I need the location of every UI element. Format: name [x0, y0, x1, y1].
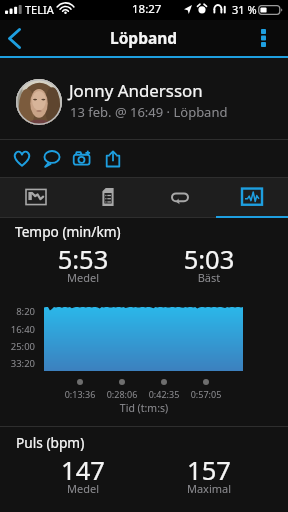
staticText: Maximal [159, 481, 259, 496]
staticText: TELIA [25, 2, 54, 17]
button[interactable]: Charts [216, 177, 288, 217]
button[interactable]: Share [98, 143, 128, 173]
staticText: 8:20 [0, 305, 35, 318]
staticText: 16:40 [0, 323, 35, 336]
staticText: 33:20 [0, 357, 35, 370]
staticText: Löpband [110, 27, 178, 48]
button[interactable]: More options [247, 22, 279, 54]
staticText: Medel [33, 481, 133, 496]
button[interactable]: Back [0, 21, 28, 55]
staticText: Medel [33, 270, 133, 285]
staticText: Tempo (min/km) [15, 222, 121, 241]
staticText: 5:03 [159, 242, 259, 277]
staticText: 0:28:06 [97, 388, 147, 400]
staticText: 0:42:35 [139, 388, 189, 400]
staticText: Bäst [159, 270, 259, 285]
staticText: 5:53 [33, 242, 133, 277]
staticText: Jonny Andersson [69, 79, 203, 102]
button[interactable]: Jonny Andersson [0, 58, 288, 140]
button[interactable]: Route map [0, 177, 72, 217]
button[interactable]: Like [7, 143, 37, 173]
staticText: 147 [33, 453, 133, 488]
button[interactable]: Comment [37, 143, 67, 173]
staticText: Puls (bpm) [16, 433, 85, 452]
staticText: 18:27 [132, 1, 162, 17]
staticText: Tid (t:m:s) [0, 401, 288, 415]
staticText: 31 % [232, 2, 257, 17]
button[interactable]: Details [72, 177, 144, 217]
staticText: 0:13:36 [55, 388, 105, 400]
staticText: 157 [159, 453, 259, 488]
staticText: 25:00 [0, 340, 35, 353]
button[interactable]: Laps [144, 177, 216, 217]
staticText: 0:57:05 [181, 388, 231, 400]
button[interactable]: Add photo [67, 143, 97, 173]
staticText: 13 feb. @ 16:49 · Löpband [70, 103, 228, 121]
